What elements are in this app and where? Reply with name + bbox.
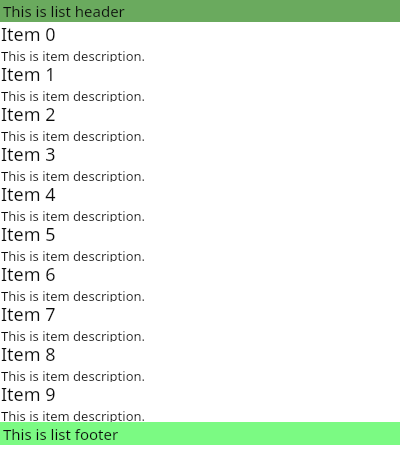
staticText: This is item description.: [1, 287, 146, 302]
staticText: Item 6: [1, 262, 56, 287]
button[interactable]: Item 8: [0, 342, 400, 382]
staticText: Item 9: [1, 382, 56, 407]
staticText: Item 1: [1, 62, 56, 87]
staticText: Item 0: [1, 22, 56, 47]
button[interactable]: This is list footer: [0, 422, 400, 445]
staticText: This is item description.: [1, 367, 146, 382]
staticText: Item 5: [1, 222, 56, 247]
staticText: This is item description.: [1, 327, 146, 342]
staticText: This is item description.: [1, 47, 146, 62]
button[interactable]: Item 6: [0, 262, 400, 302]
button[interactable]: Item 4: [0, 182, 400, 222]
staticText: Item 3: [1, 142, 56, 167]
staticText: Item 7: [1, 302, 56, 327]
staticText: This is item description.: [1, 247, 146, 262]
button[interactable]: Item 7: [0, 302, 400, 342]
staticText: This is item description.: [1, 207, 146, 222]
staticText: This is item description.: [1, 407, 146, 422]
staticText: Item 4: [1, 182, 56, 207]
staticText: Item 2: [1, 102, 56, 127]
button[interactable]: Item 1: [0, 62, 400, 102]
staticText: Item 8: [1, 342, 56, 367]
button[interactable]: Item 2: [0, 102, 400, 142]
button[interactable]: This is list header: [0, 0, 400, 22]
button[interactable]: Item 9: [0, 382, 400, 422]
staticText: This is item description.: [1, 167, 146, 182]
staticText: This is list header: [3, 1, 125, 21]
button[interactable]: Item 0: [0, 22, 400, 62]
staticText: This is item description.: [1, 127, 146, 142]
staticText: This is item description.: [1, 87, 146, 102]
button[interactable]: Item 3: [0, 142, 400, 182]
staticText: This is list footer: [3, 424, 119, 444]
button[interactable]: Item 5: [0, 222, 400, 262]
